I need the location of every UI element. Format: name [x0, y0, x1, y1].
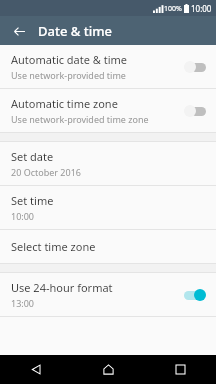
staticText: Set time	[11, 193, 54, 208]
staticText: Select time zone	[11, 239, 96, 254]
button[interactable]: Toggle off	[184, 104, 206, 118]
button[interactable]: Automatic time zone	[0, 89, 216, 132]
button[interactable]: Home	[72, 355, 144, 384]
button[interactable]: Automatic date & time	[0, 45, 216, 88]
staticText: 10:00	[11, 210, 35, 222]
staticText: Use network-provided time zone	[11, 113, 149, 125]
button[interactable]: Back	[8, 20, 30, 42]
button[interactable]: Toggle off	[184, 60, 206, 74]
button[interactable]: Back	[0, 355, 72, 384]
staticText: Automatic time zone	[11, 96, 118, 111]
button[interactable]: Select time zone	[0, 230, 216, 263]
button[interactable]: Recent apps	[144, 355, 216, 384]
staticText: Set date	[11, 149, 54, 164]
button[interactable]: Use 24-hour format	[0, 273, 216, 316]
staticText: 100%	[164, 4, 182, 14]
button[interactable]: Toggle on	[184, 288, 206, 302]
staticText: 13:00	[11, 297, 35, 309]
button[interactable]: Set time	[0, 186, 216, 229]
staticText: Date & time	[38, 22, 112, 40]
staticText: Use 24-hour format	[11, 280, 113, 295]
staticText: 10:00	[191, 3, 212, 14]
staticText: Use network-provided time	[11, 69, 126, 81]
staticText: Automatic date & time	[11, 52, 128, 67]
button[interactable]: Set date	[0, 142, 216, 185]
staticText: 20 October 2016	[11, 166, 81, 178]
